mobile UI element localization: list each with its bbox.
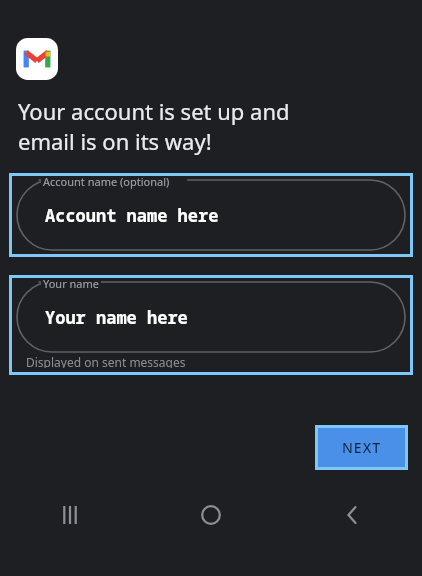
staticText: NEXT [342,438,382,457]
button[interactable]: Recents [0,485,140,545]
staticText: Displayed on sent messages [26,354,186,368]
staticText: Your account is set up and email is on i… [18,96,290,156]
button[interactable]: Account name (optional) [9,173,413,257]
button[interactable]: Back [281,485,422,545]
staticText: Your name [43,276,99,291]
button[interactable]: Home [140,485,281,545]
button[interactable]: Your name [9,275,413,375]
button[interactable]: NEXT [318,428,405,467]
staticText: Account name (optional) [43,174,170,189]
staticText: Account name here [45,204,219,227]
staticText: Your name here [45,306,188,329]
